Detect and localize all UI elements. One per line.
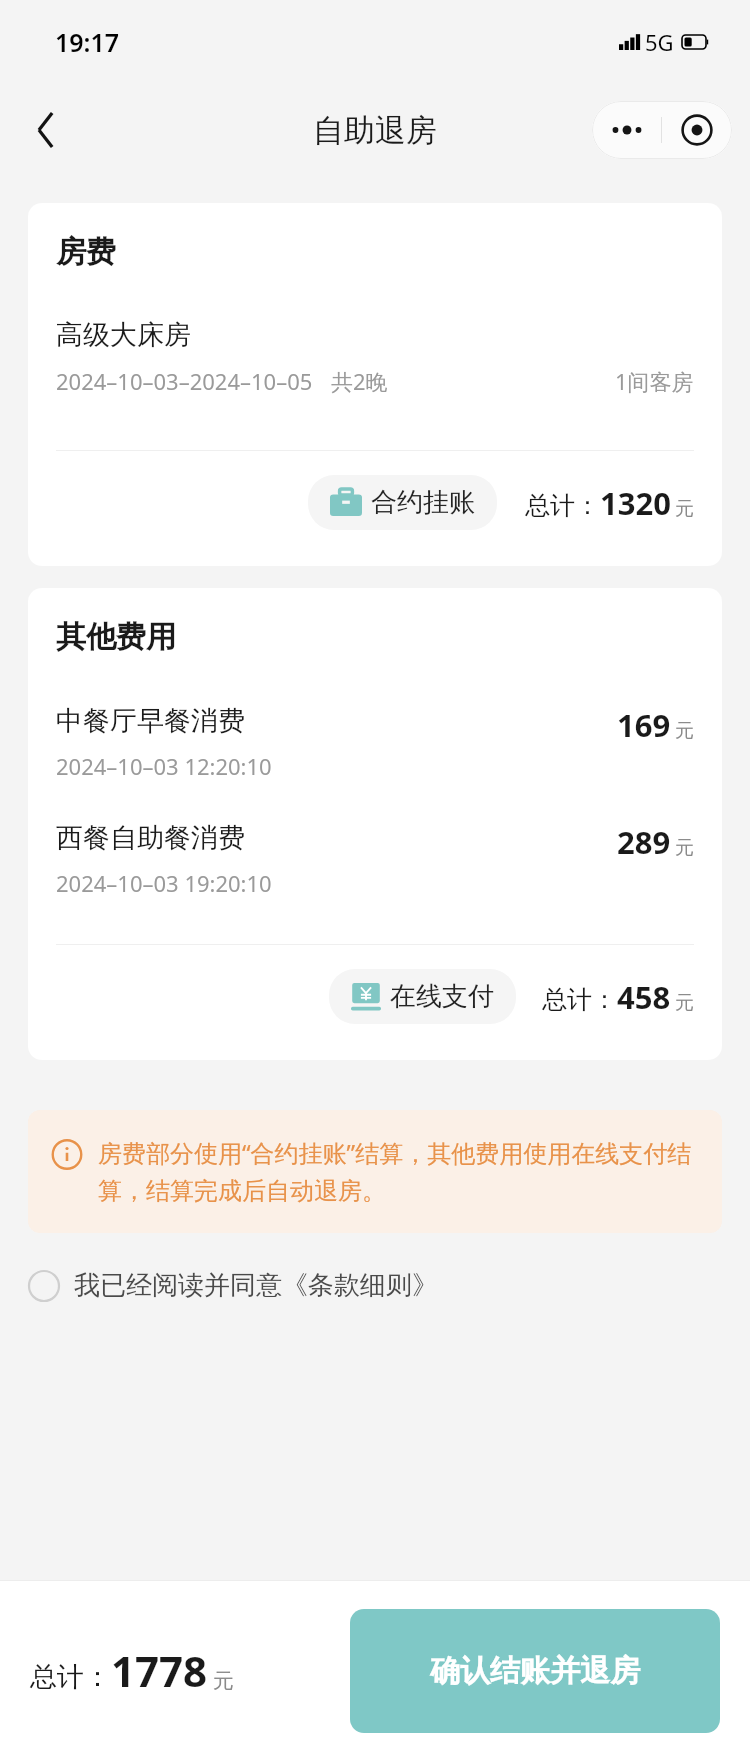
- staticText: 元: [675, 991, 694, 1015]
- staticText: 确认结账并退房: [430, 1652, 640, 1690]
- staticText: 西餐自助餐消费: [56, 821, 245, 855]
- staticText: 2024–10–03–2024–10–05: [56, 366, 313, 396]
- button[interactable]: More: [592, 101, 661, 159]
- button[interactable]: 在线支付: [329, 969, 516, 1024]
- staticText: 1间客房: [615, 366, 694, 396]
- button[interactable]: Close: [662, 101, 732, 159]
- button[interactable]: 我已经阅读并同意《条款细则》: [28, 1261, 722, 1310]
- staticText: 元: [675, 497, 694, 521]
- staticText: 在线支付: [390, 980, 494, 1013]
- staticText: 合约挂账: [371, 486, 475, 519]
- staticText: 2024–10–03 19:20:10: [56, 868, 272, 898]
- staticText: 中餐厅早餐消费: [56, 704, 245, 738]
- staticText: 5G: [645, 27, 674, 57]
- staticText: 2024–10–03 12:20:10: [56, 751, 272, 781]
- button[interactable]: Back: [18, 102, 74, 158]
- staticText: 169: [617, 704, 671, 746]
- staticText: 19:17: [55, 25, 120, 59]
- staticText: 自助退房: [313, 111, 437, 150]
- staticText: 289: [617, 821, 671, 863]
- staticText: 共2晚: [331, 366, 388, 396]
- staticText: 总计：: [542, 984, 617, 1015]
- staticText: 元: [213, 1668, 234, 1694]
- staticText: 我已经阅读并同意《条款细则》: [74, 1269, 438, 1302]
- staticText: 元: [675, 719, 694, 743]
- staticText: 元: [675, 836, 694, 860]
- staticText: 其他费用: [56, 618, 176, 656]
- button[interactable]: 确认结账并退房: [350, 1609, 720, 1733]
- staticText: 房费: [56, 233, 116, 271]
- staticText: 1320: [600, 482, 671, 524]
- staticText: 总计：: [30, 1660, 111, 1694]
- staticText: 总计：: [525, 490, 600, 521]
- staticText: 1778: [111, 1642, 208, 1699]
- staticText: 458: [617, 976, 671, 1018]
- staticText: 高级大床房: [56, 318, 191, 352]
- staticText: 房费部分使用“合约挂账”结算，其他费用使用在线支付结算，结算完成后自动退房。: [98, 1136, 698, 1207]
- button[interactable]: 合约挂账: [308, 475, 497, 530]
